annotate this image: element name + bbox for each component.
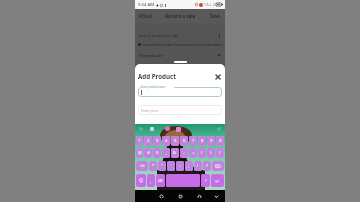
- button[interactable]: (: [198, 148, 206, 158]
- staticText: 7: [192, 138, 195, 144]
- button[interactable]: Settings: [217, 127, 221, 131]
- button[interactable]: Emoji: [136, 174, 146, 187]
- staticText: 3: [156, 138, 159, 144]
- button[interactable]: ;: [185, 161, 193, 171]
- button[interactable]: $: [153, 148, 161, 158]
- staticText: ?: [206, 163, 208, 169]
- button[interactable]: 8: [198, 136, 206, 146]
- staticText: !: [197, 163, 199, 169]
- staticText: Search product to add: [139, 33, 179, 38]
- staticText: #: [147, 150, 150, 156]
- staticText: Back: [142, 13, 153, 19]
- button[interactable]: Emoji suggestion: [165, 126, 170, 131]
- staticText: @: [138, 150, 142, 156]
- button[interactable]: 5: [171, 136, 179, 146]
- staticText: Add Product: [138, 72, 176, 80]
- button[interactable]: ': [167, 161, 175, 171]
- staticText: =\<: [140, 164, 145, 168]
- staticText: 8: [201, 138, 204, 144]
- button[interactable]: #: [144, 148, 152, 158]
- button[interactable]: !: [194, 161, 202, 171]
- button[interactable]: ?: [203, 161, 211, 171]
- button[interactable]: Enter product name: [138, 87, 222, 97]
- button[interactable]: ,: [147, 174, 155, 187]
- staticText: ABC: [158, 179, 163, 183]
- staticText: *: [152, 163, 155, 169]
- button[interactable]: *: [149, 161, 157, 171]
- button[interactable]: Space: [166, 174, 200, 187]
- button[interactable]: &: [171, 148, 179, 158]
- staticText: ": [161, 163, 163, 169]
- staticText: /: [205, 178, 207, 184]
- button[interactable]: GIF: [176, 127, 181, 132]
- button[interactable]: Enter price: [138, 105, 222, 115]
- button[interactable]: Hide keyboard: [211, 191, 221, 201]
- button[interactable]: +: [189, 148, 197, 158]
- button[interactable]: @: [136, 148, 143, 158]
- staticText: _: [165, 150, 167, 156]
- staticText: ☺: [139, 178, 144, 183]
- button[interactable]: =\<: [136, 161, 148, 171]
- staticText: 0: [219, 138, 222, 144]
- button[interactable]: Home: [175, 191, 185, 201]
- button[interactable]: 7: [189, 136, 197, 146]
- button[interactable]: -: [180, 148, 188, 158]
- staticText: ↵: [215, 178, 220, 184]
- button[interactable]: 9: [207, 136, 215, 146]
- staticText: 9:34 AM: [138, 2, 155, 8]
- button[interactable]: Enter: [211, 174, 224, 187]
- button[interactable]: 0: [216, 136, 224, 146]
- button[interactable]: _: [162, 148, 170, 158]
- button[interactable]: /: [216, 148, 224, 158]
- staticText: ): [210, 150, 212, 156]
- button[interactable]: 1: [136, 136, 143, 146]
- staticText: Record a sale: [165, 13, 196, 20]
- staticText: Enter price: [141, 108, 159, 113]
- staticText: (: [201, 150, 203, 156]
- staticText: +: [192, 150, 195, 156]
- button[interactable]: ": [158, 161, 166, 171]
- button[interactable]: ABC: [156, 174, 165, 187]
- button[interactable]: Recents: [194, 191, 204, 201]
- staticText: 1: [218, 32, 221, 39]
- staticText: Save: [210, 13, 221, 19]
- button[interactable]: ): [207, 148, 215, 158]
- button[interactable]: 2: [144, 136, 152, 146]
- button[interactable]: Voice input: [139, 127, 143, 131]
- staticText: 2: [147, 138, 150, 144]
- staticText: ⌦: [215, 164, 222, 169]
- button[interactable]: Sticker: [150, 127, 154, 131]
- staticText: 4: [165, 138, 168, 144]
- staticText: Enter product name: [141, 85, 166, 89]
- button[interactable]: 6: [180, 136, 188, 146]
- staticText: 2: [213, 2, 215, 7]
- staticText: Physical sale: [139, 53, 163, 58]
- staticText: 9: [210, 138, 213, 144]
- staticText: ;: [188, 163, 190, 169]
- button[interactable]: /: [201, 174, 210, 187]
- button[interactable]: Back: [156, 191, 166, 201]
- staticText: 1.5↓: [204, 2, 212, 7]
- button[interactable]: 4: [162, 136, 170, 146]
- button[interactable]: :: [176, 161, 184, 171]
- staticText: :: [179, 163, 181, 169]
- button[interactable]: Backspace: [212, 161, 224, 171]
- staticText: /: [219, 150, 221, 156]
- button[interactable]: 3: [153, 136, 161, 146]
- staticText: -: [183, 150, 185, 156]
- staticText: ,: [150, 178, 152, 184]
- staticText: Leave blank if you don't have business c…: [142, 43, 222, 47]
- staticText: 5: [174, 138, 177, 144]
- button[interactable]: Close: [213, 72, 222, 81]
- staticText: &: [173, 150, 177, 156]
- staticText: ': [171, 163, 172, 169]
- staticText: 1: [138, 138, 141, 144]
- staticText: 6: [183, 138, 186, 144]
- staticText: $: [156, 150, 159, 156]
